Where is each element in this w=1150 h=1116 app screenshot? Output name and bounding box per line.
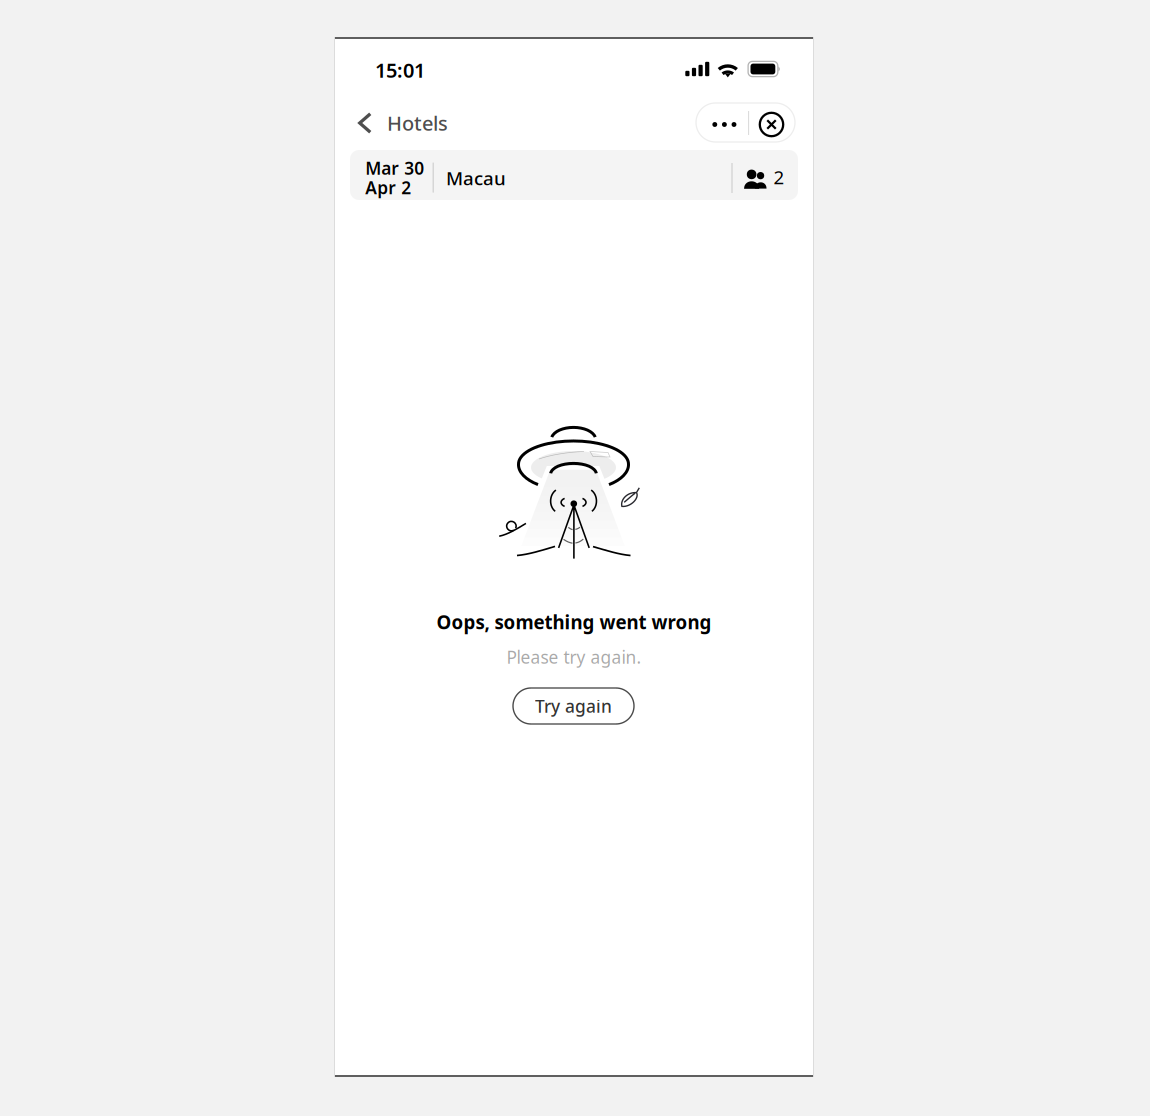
button[interactable]: Mar 30: [350, 150, 798, 200]
staticText: Apr 2: [365, 176, 411, 199]
staticText: Oops, something went wrong: [436, 610, 711, 634]
button[interactable]: Try again: [513, 688, 634, 724]
staticText: 15:01: [375, 57, 425, 83]
staticText: Macau: [446, 166, 506, 190]
staticText: Mar 30: [365, 156, 424, 179]
staticText: 2: [773, 165, 784, 189]
staticText: Try again: [535, 694, 612, 717]
button[interactable]: Hotels: [358, 103, 488, 143]
staticText: Please try again.: [506, 645, 641, 668]
button[interactable]: Close: [748, 105, 795, 144]
staticText: Hotels: [387, 110, 448, 136]
button[interactable]: More options: [698, 105, 750, 144]
